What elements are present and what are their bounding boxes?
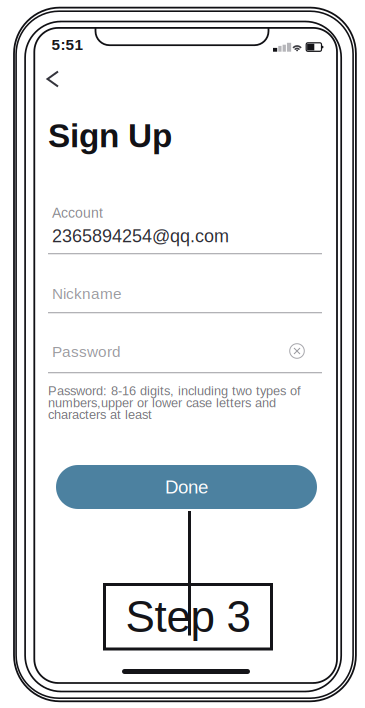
button[interactable]: Clear password xyxy=(288,342,306,360)
staticText: Nickname xyxy=(52,285,122,302)
button[interactable]: Done xyxy=(56,465,317,509)
staticText: characters at least xyxy=(48,407,152,422)
staticText: Account xyxy=(52,205,103,221)
staticText: Step 3 xyxy=(125,592,250,641)
staticText: Password xyxy=(52,343,121,360)
staticText: Sign Up xyxy=(48,117,172,154)
staticText: numbers,upper or lower case letters and xyxy=(48,396,276,410)
staticText: 5:51 xyxy=(51,36,83,53)
button[interactable]: Back xyxy=(36,62,70,96)
staticText: Done xyxy=(165,477,208,497)
staticText: 2365894254@qq.com xyxy=(52,226,229,246)
staticText: Password: 8-16 digits, including two typ… xyxy=(48,384,301,398)
